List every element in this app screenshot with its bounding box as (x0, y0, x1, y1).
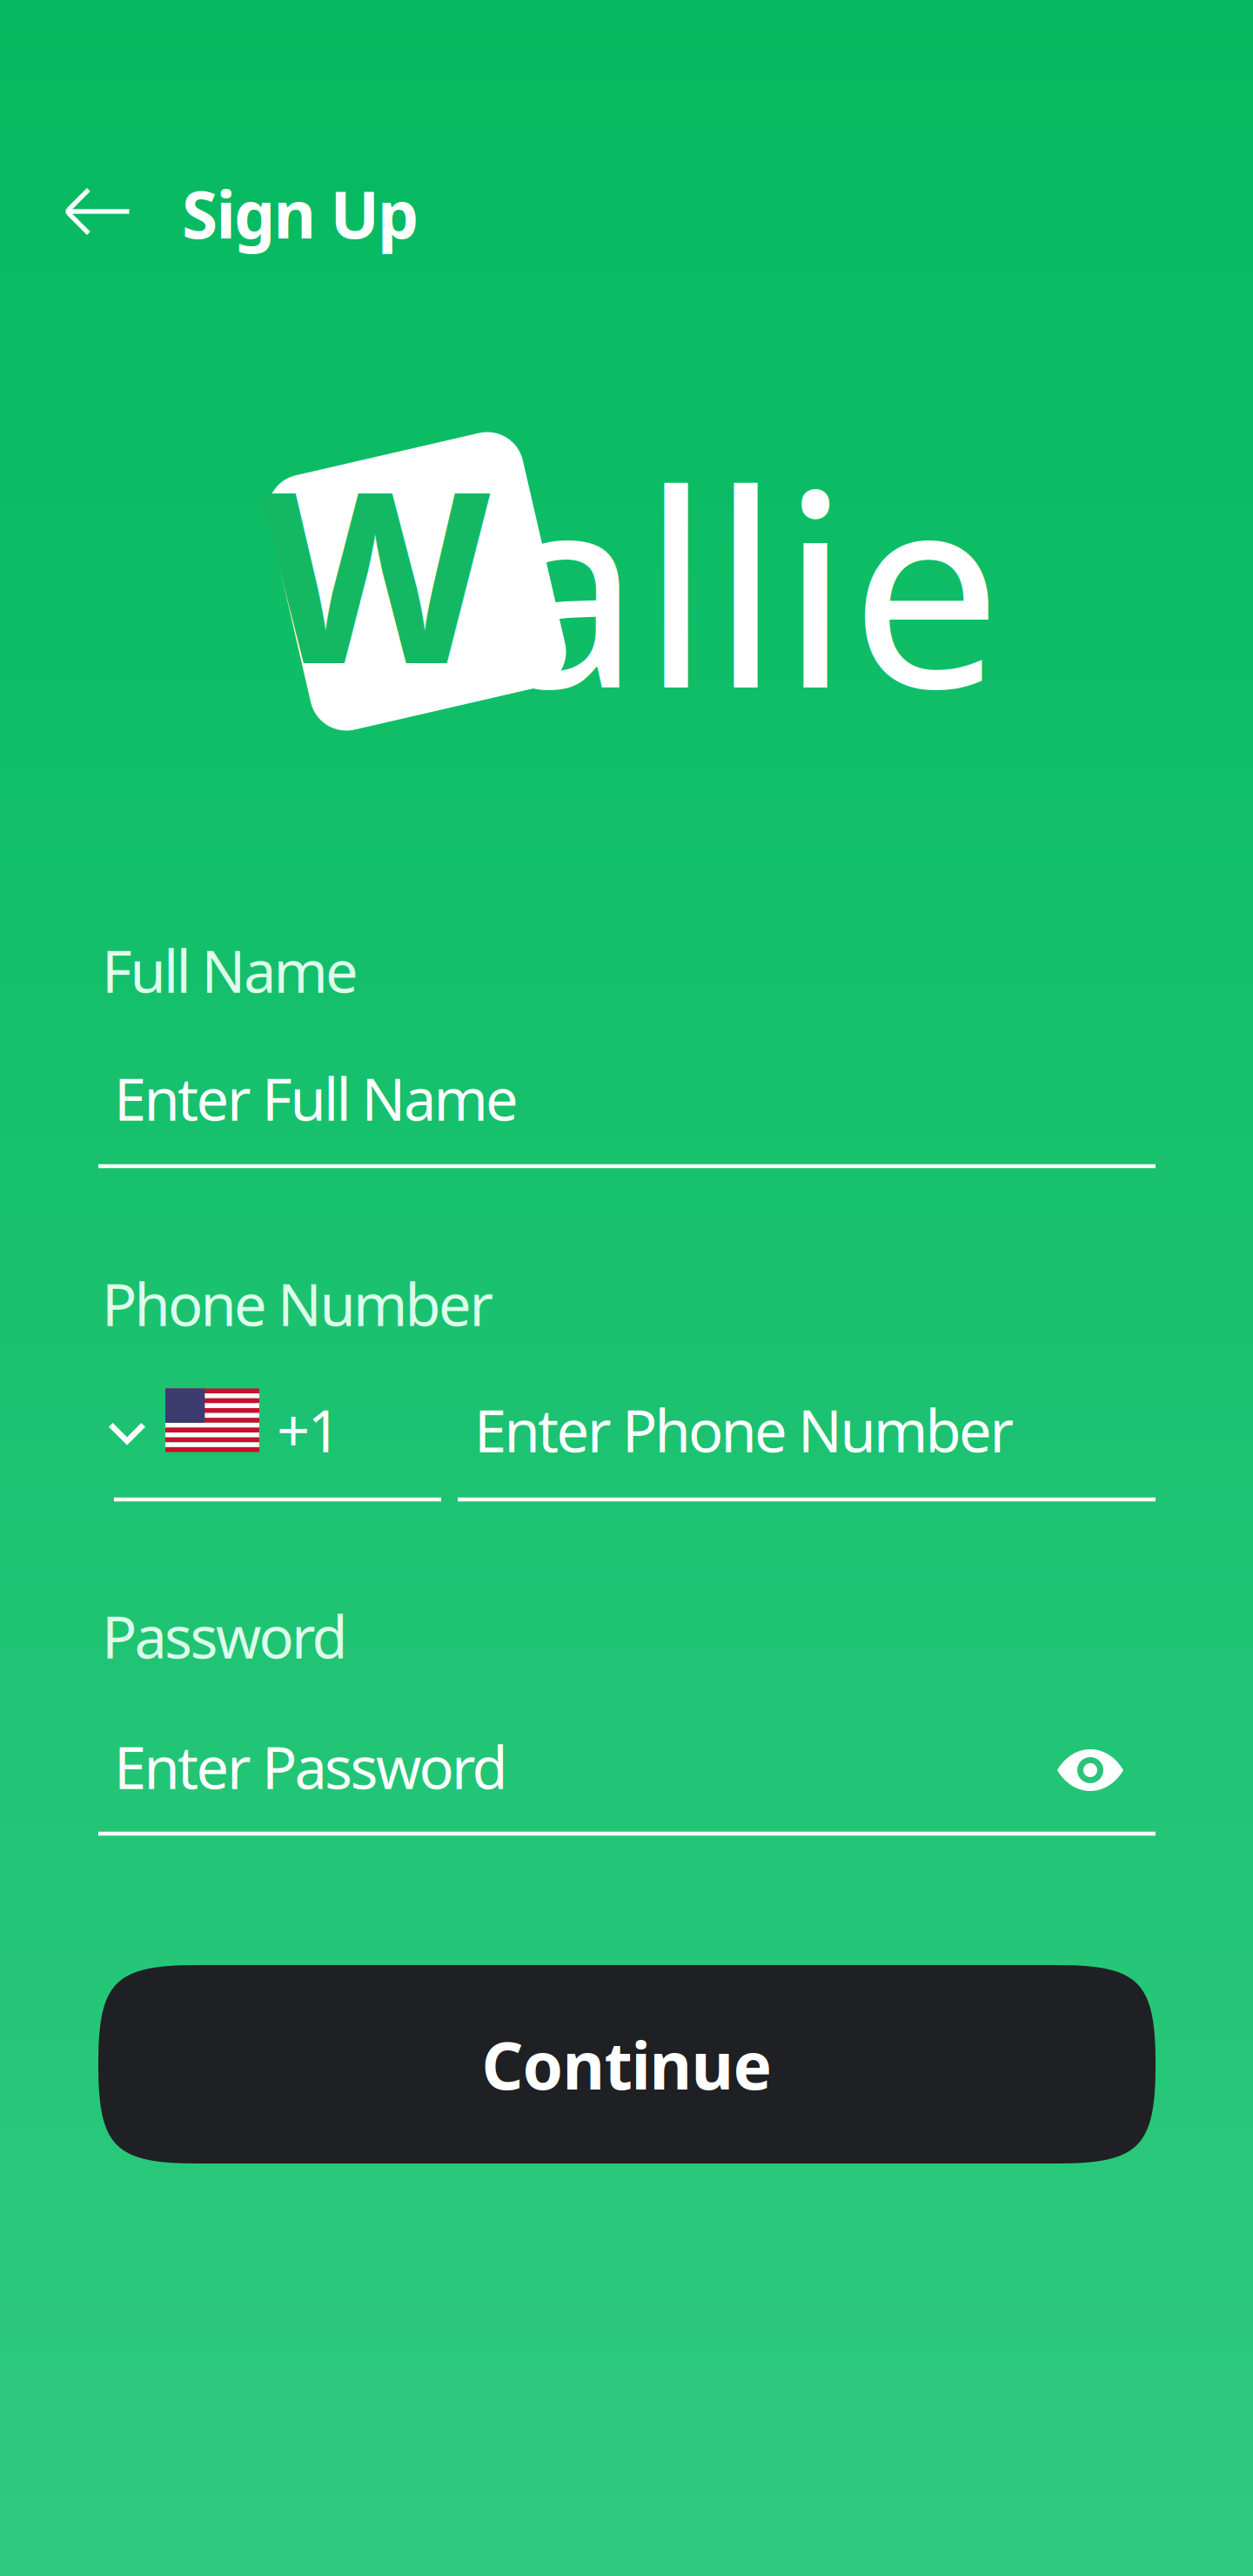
button[interactable]: Continue (98, 1965, 1156, 2163)
staticText: Enter Password (114, 1728, 508, 1805)
staticText: Password (102, 1598, 348, 1675)
button[interactable]: Show password (1042, 1727, 1139, 1814)
staticText: allie (490, 404, 1002, 762)
staticText: Full Name (102, 932, 358, 1009)
staticText: Sign Up (182, 170, 419, 256)
staticText: Phone Number (102, 1265, 494, 1342)
staticText: Enter Phone Number (474, 1391, 1014, 1468)
staticText: W (260, 413, 490, 729)
staticText: Continue (482, 2021, 772, 2107)
button[interactable]: Back (63, 164, 132, 259)
staticText: Enter Full Name (114, 1060, 519, 1137)
staticText: +1 (277, 1391, 341, 1468)
